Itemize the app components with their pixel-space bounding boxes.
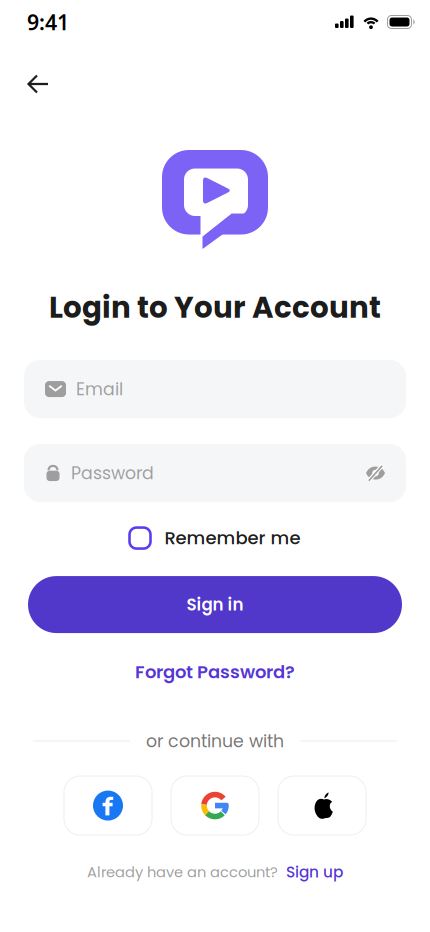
staticText: 9:41 bbox=[27, 8, 69, 36]
staticText: or continue with bbox=[146, 729, 284, 753]
button[interactable]: Sign in bbox=[0, 576, 430, 633]
staticText: Email bbox=[76, 377, 123, 401]
button[interactable]: Remember me bbox=[129, 516, 300, 560]
staticText: Remember me bbox=[164, 525, 300, 551]
staticText: Sign in bbox=[186, 593, 243, 616]
button[interactable]: Sign up bbox=[286, 861, 343, 883]
staticText: Forgot Password? bbox=[135, 659, 295, 685]
staticText: Already have an account? bbox=[87, 862, 278, 882]
button[interactable]: Back bbox=[0, 62, 61, 106]
button[interactable]: Continue with Facebook bbox=[64, 776, 152, 835]
button[interactable]: Show password bbox=[365, 464, 386, 483]
staticText: Password bbox=[71, 461, 154, 485]
staticText: Sign up bbox=[286, 861, 343, 883]
button[interactable]: Continue with Apple bbox=[278, 776, 366, 835]
staticText: Login to Your Account bbox=[49, 287, 381, 328]
button[interactable]: Continue with Google bbox=[171, 776, 259, 835]
button[interactable]: Forgot Password? bbox=[135, 652, 295, 692]
